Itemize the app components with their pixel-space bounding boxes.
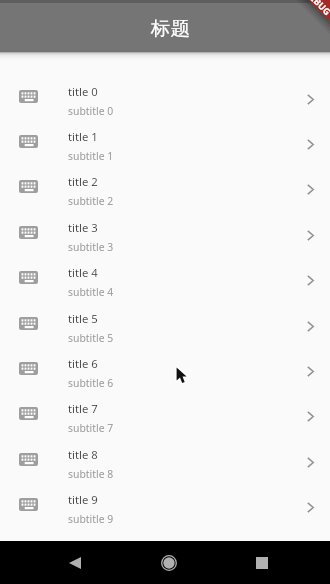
staticText: title 8: [68, 447, 98, 462]
staticText: subtitle 2: [68, 194, 114, 208]
staticText: subtitle 9: [68, 512, 114, 526]
staticText: title 7: [68, 401, 98, 416]
button[interactable]: title 7: [0, 394, 330, 439]
button[interactable]: title 4: [0, 258, 330, 303]
staticText: title 9: [68, 492, 98, 507]
staticText: subtitle 1: [68, 149, 114, 163]
staticText: subtitle 3: [68, 240, 114, 254]
staticText: 标题: [151, 16, 190, 40]
button[interactable]: title 8: [0, 440, 330, 485]
staticText: subtitle 6: [68, 376, 114, 390]
staticText: title 0: [68, 84, 98, 99]
button[interactable]: title 5: [0, 304, 330, 349]
button[interactable]: title 2: [0, 167, 330, 212]
button[interactable]: Recent apps: [226, 541, 298, 584]
button[interactable]: title 0: [0, 77, 330, 122]
staticText: subtitle 0: [68, 104, 114, 118]
staticText: subtitle 5: [68, 331, 114, 345]
staticText: title 1: [68, 129, 98, 144]
button[interactable]: title 9: [0, 485, 330, 530]
button[interactable]: title 3: [0, 213, 330, 258]
staticText: subtitle 7: [68, 421, 114, 435]
staticText: DEBUG: [303, 0, 330, 17]
button[interactable]: Back: [39, 541, 111, 584]
staticText: title 2: [68, 174, 98, 189]
staticText: subtitle 4: [68, 285, 114, 299]
staticText: title 3: [68, 220, 98, 235]
button[interactable]: title 6: [0, 349, 330, 394]
button[interactable]: title 1: [0, 122, 330, 167]
staticText: title 5: [68, 311, 98, 326]
staticText: title 6: [68, 356, 98, 371]
staticText: title 4: [68, 265, 98, 280]
button[interactable]: Home: [133, 541, 205, 584]
staticText: subtitle 8: [68, 467, 114, 481]
